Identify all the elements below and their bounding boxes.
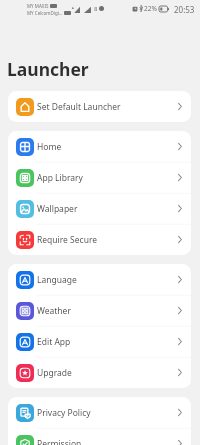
staticText: App Library (37, 172, 83, 184)
staticText: Upgrade (37, 367, 72, 379)
button[interactable]: App Library (8, 162, 191, 193)
staticText: MY MAXIS (27, 3, 49, 9)
button[interactable]: Set Default Launcher (8, 91, 191, 122)
staticText: Launcher (7, 57, 89, 81)
staticText: Home (37, 141, 62, 153)
staticText: 20:53 (174, 4, 195, 15)
staticText: 8 (94, 5, 98, 13)
button[interactable]: Require Secure (8, 224, 191, 255)
staticText: Wallpaper (37, 203, 78, 215)
staticText: Permission (37, 438, 82, 445)
button[interactable]: Weather (8, 295, 191, 326)
staticText: Require Secure (37, 234, 98, 246)
staticText: Privacy Policy (37, 407, 91, 419)
staticText: Edit App (37, 336, 71, 348)
button[interactable]: Home (8, 131, 191, 162)
button[interactable]: Upgrade (8, 357, 191, 388)
staticText: Set Default Launcher (37, 101, 121, 113)
staticText: 22% (144, 4, 157, 13)
button[interactable]: Edit App (8, 326, 191, 357)
button[interactable]: Permission (8, 428, 191, 445)
button[interactable]: Privacy Policy (8, 397, 191, 428)
staticText: Weather (37, 305, 71, 317)
button[interactable]: Language (8, 264, 191, 295)
button[interactable]: Wallpaper (8, 193, 191, 224)
staticText: Language (37, 274, 77, 286)
staticText: MY CelcomDigi... (27, 10, 63, 16)
